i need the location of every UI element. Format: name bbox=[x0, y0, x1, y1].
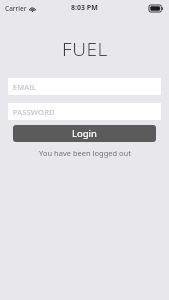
staticText: Carrier bbox=[5, 4, 27, 13]
staticText: EMAIL bbox=[13, 82, 37, 92]
staticText: Login bbox=[72, 127, 97, 140]
staticText: PASSWORD bbox=[13, 107, 55, 117]
button[interactable]: EMAIL bbox=[8, 78, 161, 95]
staticText: FUEL bbox=[62, 36, 108, 58]
button[interactable]: PASSWORD bbox=[8, 103, 161, 120]
staticText: You have been logged out bbox=[39, 148, 131, 158]
staticText: 8:03 PM bbox=[71, 3, 98, 13]
button[interactable]: Login bbox=[13, 125, 156, 142]
